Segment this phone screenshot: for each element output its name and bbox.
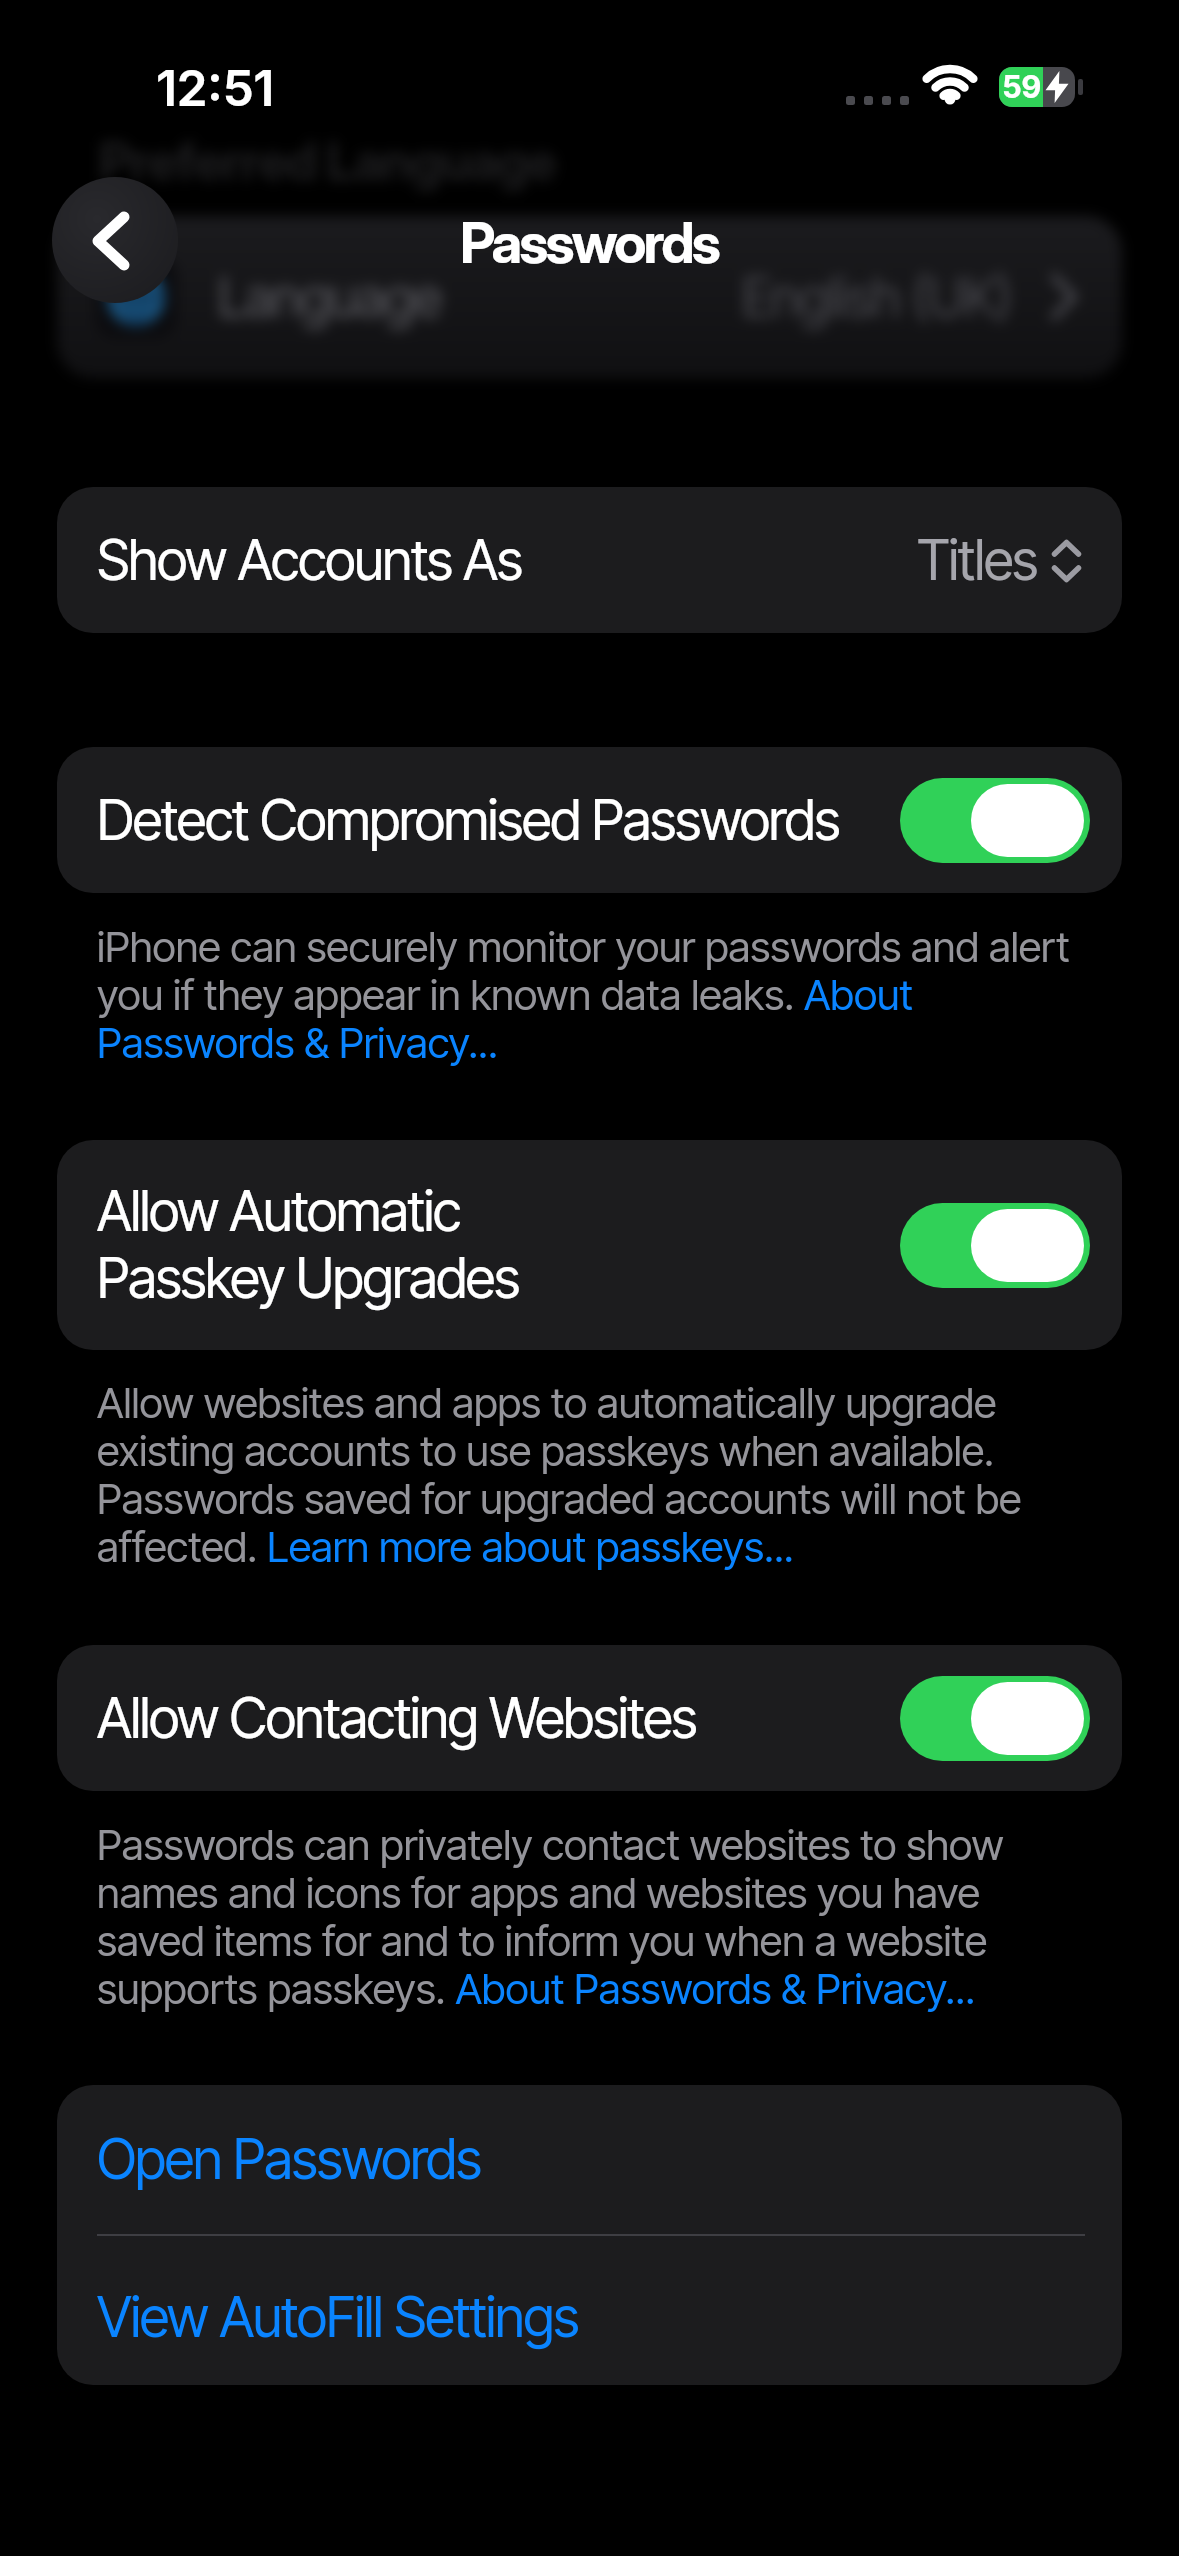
staticText: Titles (917, 527, 1037, 594)
staticText: Passwords & Privacy... (97, 1017, 499, 1068)
staticText: affected. Learn more about passkeys... (97, 1521, 794, 1572)
button[interactable]: Show Accounts As (57, 487, 1122, 633)
staticText: Preferred Language (99, 130, 556, 193)
staticText: Detect Compromised Passwords (97, 787, 840, 854)
staticText: Show Accounts As (97, 527, 522, 594)
staticText: View AutoFill Settings (97, 2284, 579, 2351)
staticText: existing accounts to use passkeys when a… (97, 1425, 994, 1476)
staticText: Allow Contacting Websites (97, 1685, 697, 1752)
button[interactable] (900, 778, 1090, 863)
staticText: Passwords (460, 209, 719, 277)
staticText: English (UK) (742, 265, 1012, 330)
button[interactable]: Allow Automatic (57, 1140, 1122, 1350)
button[interactable] (900, 1203, 1090, 1288)
button[interactable]: Detect Compromised Passwords (57, 747, 1122, 893)
staticText: Allow websites and apps to automatically… (97, 1377, 997, 1428)
staticText: you if they appear in known data leaks. … (97, 969, 913, 1020)
button[interactable]: Open Passwords (57, 2085, 1122, 2234)
staticText: names and icons for apps and websites yo… (97, 1867, 980, 1918)
staticText: iPhone can securely monitor your passwor… (97, 921, 1070, 972)
staticText: Passkey Upgrades (97, 1245, 519, 1312)
button[interactable] (52, 177, 178, 303)
staticText: Passwords saved for upgraded accounts wi… (97, 1473, 1022, 1524)
staticText: 59 (1002, 68, 1041, 106)
staticText: Allow Automatic (97, 1178, 461, 1245)
button[interactable] (900, 1676, 1090, 1761)
staticText: Language (218, 265, 442, 330)
staticText: 12:51 (156, 58, 274, 118)
button[interactable]: Allow Contacting Websites (57, 1645, 1122, 1791)
staticText: supports passkeys. About Passwords & Pri… (97, 1963, 976, 2014)
staticText: Passwords can privately contact websites… (97, 1819, 1004, 1870)
button[interactable]: View AutoFill Settings (57, 2236, 1122, 2385)
staticText: saved items for and to inform you when a… (97, 1915, 988, 1966)
staticText: Open Passwords (97, 2126, 481, 2193)
